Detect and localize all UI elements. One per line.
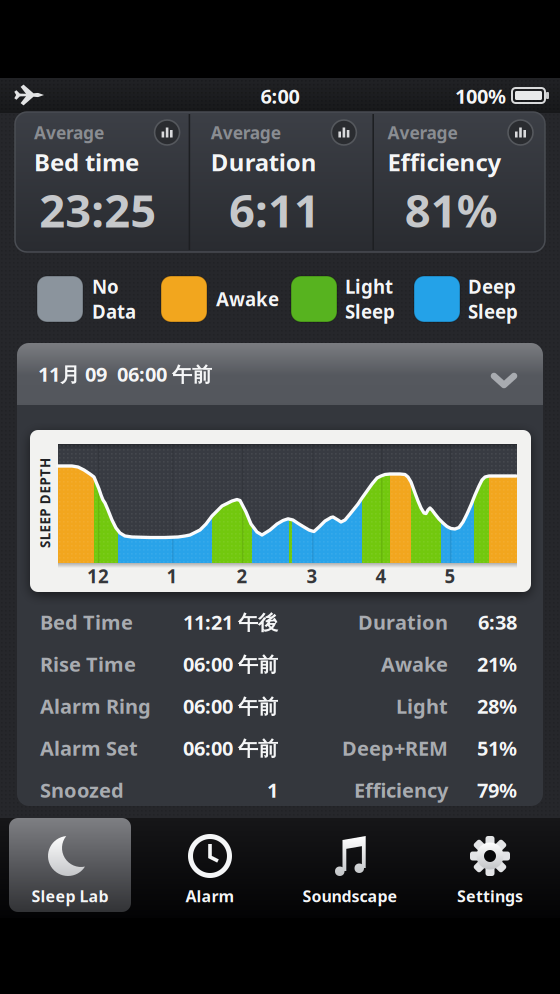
staticText: Data	[92, 299, 136, 324]
staticText: 81%	[405, 180, 498, 240]
staticText: 23:25	[39, 180, 156, 240]
staticText: Deep	[468, 274, 516, 299]
staticText: 5	[444, 564, 455, 588]
staticText: 11:21 午後	[183, 609, 278, 635]
button[interactable]: Average	[192, 112, 368, 252]
button[interactable]: Soundscape	[280, 818, 420, 918]
staticText: Alarm Ring	[40, 693, 151, 719]
staticText: Efficiency	[354, 777, 448, 803]
staticText: 1	[166, 564, 177, 588]
staticText: 06:00 午前	[183, 651, 278, 677]
staticText: 79%	[477, 777, 517, 803]
staticText: 06:00 午前	[183, 693, 278, 719]
staticText: 6:11	[229, 180, 320, 240]
staticText: Average	[211, 121, 281, 144]
button[interactable]: 11月 09 06:00 午前	[17, 343, 543, 405]
staticText: 51%	[477, 735, 517, 761]
button[interactable]: Average	[368, 112, 545, 252]
staticText: 11月 09 06:00 午前	[38, 361, 212, 387]
staticText: Alarm Set	[40, 735, 138, 761]
staticText: Light	[396, 693, 448, 719]
staticText: Bed Time	[40, 609, 133, 635]
staticText: Sleep	[345, 299, 395, 324]
staticText: 2	[236, 564, 247, 588]
staticText: Settings	[457, 885, 523, 907]
staticText: Rise Time	[40, 651, 136, 677]
staticText: 3	[306, 564, 317, 588]
staticText: 28%	[477, 693, 517, 719]
staticText: Bed time	[34, 146, 139, 178]
staticText: 4	[375, 564, 386, 588]
staticText: Sleep Lab	[31, 885, 108, 907]
staticText: Awake	[381, 651, 448, 677]
button[interactable]: Settings	[420, 818, 560, 918]
staticText: 100%	[455, 83, 506, 109]
staticText: 6:00	[260, 83, 299, 109]
staticText: Average	[387, 121, 457, 144]
button[interactable]: Average	[15, 112, 192, 252]
button[interactable]: Alarm	[140, 818, 280, 918]
button[interactable]: Sleep Lab	[0, 818, 140, 918]
staticText: 6:38	[478, 609, 517, 635]
staticText: Light	[345, 274, 393, 299]
staticText: Alarm	[185, 885, 234, 907]
staticText: Sleep	[468, 299, 518, 324]
staticText: Awake	[216, 287, 279, 311]
staticText: 21%	[477, 651, 517, 677]
staticText: 06:00 午前	[183, 735, 278, 761]
staticText: Duration	[358, 609, 448, 635]
staticText: Duration	[211, 146, 317, 178]
staticText: Deep+REM	[342, 735, 448, 761]
staticText: No	[92, 274, 119, 299]
staticText: SLEEP DEPTH	[0, 494, 90, 512]
staticText: Snoozed	[40, 777, 124, 803]
staticText: 1	[267, 777, 278, 803]
staticText: Soundscape	[302, 885, 397, 907]
staticText: 12	[87, 564, 109, 588]
staticText: Efficiency	[387, 146, 501, 178]
staticText: Average	[34, 121, 104, 144]
